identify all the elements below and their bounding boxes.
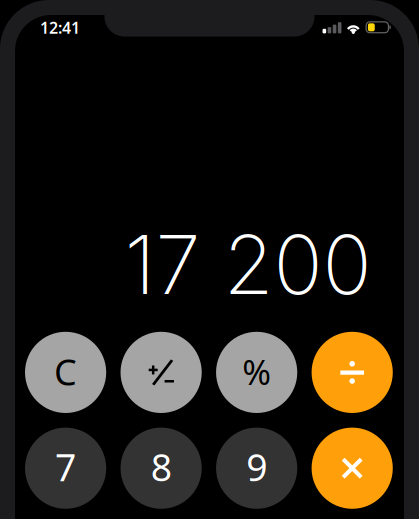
staticText: 9: [246, 442, 267, 492]
staticText: 17 200: [124, 215, 371, 314]
button[interactable]: 8: [120, 428, 202, 509]
staticText: 12:41: [40, 17, 80, 38]
button[interactable]: Percent: [216, 332, 297, 413]
button[interactable]: Divide: [312, 332, 393, 413]
button[interactable]: Clear: [25, 332, 106, 413]
button[interactable]: Multiply: [312, 428, 393, 509]
staticText: 7: [55, 442, 76, 492]
button[interactable]: 9: [216, 428, 297, 509]
staticText: %: [242, 349, 271, 395]
staticText: C: [54, 348, 77, 395]
button[interactable]: Toggle sign: [120, 332, 202, 413]
staticText: 8: [151, 442, 172, 492]
button[interactable]: 7: [25, 428, 106, 509]
